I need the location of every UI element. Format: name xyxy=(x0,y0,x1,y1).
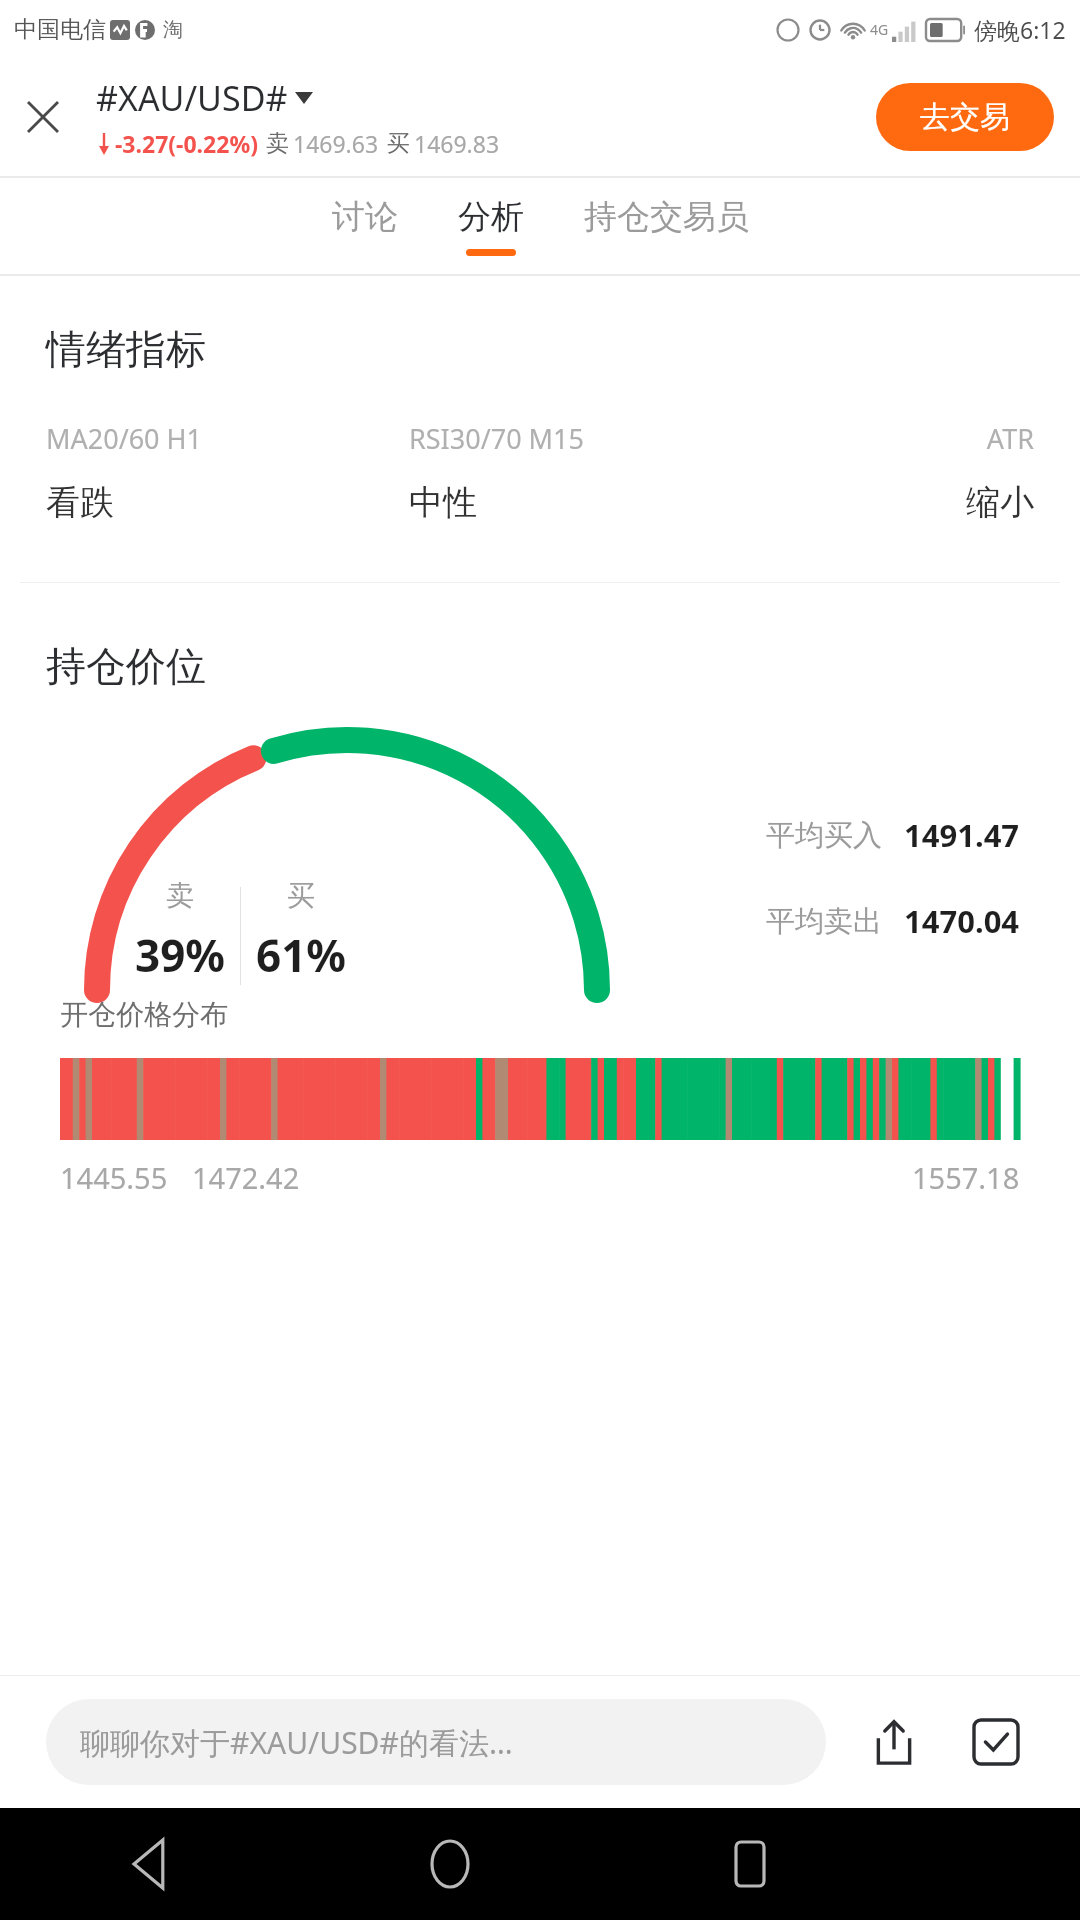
button[interactable]: 持仓交易员 xyxy=(572,190,761,262)
staticText: -3.27(-0.22%) xyxy=(115,128,258,159)
staticText: 1469.83 xyxy=(414,128,500,159)
staticText: 情绪指标 xyxy=(46,324,206,374)
staticText: 看跌 xyxy=(46,481,409,524)
staticText: 中国电信 xyxy=(14,15,106,44)
button[interactable]: Back xyxy=(0,1808,300,1920)
staticText: 傍晚6:12 xyxy=(974,14,1066,45)
button[interactable]: 分析 xyxy=(446,190,536,262)
staticText: #XAU/USD# xyxy=(96,75,288,121)
button[interactable]: Select xyxy=(958,1704,1034,1780)
button[interactable]: #XAU/USD# xyxy=(96,75,313,121)
staticText: 1472.42 xyxy=(192,1158,300,1197)
staticText: 买 xyxy=(287,878,315,913)
staticText: ATR xyxy=(772,420,1034,457)
staticText: 中性 xyxy=(409,481,772,524)
staticText: 去交易 xyxy=(920,98,1010,136)
staticText: RSI30/70 M15 xyxy=(409,420,772,457)
button[interactable]: 聊聊你对于#XAU/USD#的看法… xyxy=(46,1699,826,1785)
staticText: 39% xyxy=(135,925,226,985)
staticText: 1470.04 xyxy=(904,900,1020,942)
staticText: 卖 xyxy=(166,878,194,913)
staticText: 平均买入 xyxy=(766,817,882,854)
staticText: 讨论 xyxy=(332,196,398,238)
staticText: 平均卖出 xyxy=(766,903,882,940)
staticText: 持仓价位 xyxy=(46,641,206,691)
staticText: 淘 xyxy=(163,17,183,42)
button[interactable]: Recents xyxy=(600,1808,900,1920)
staticText: 持仓交易员 xyxy=(584,196,749,238)
staticText: 买 xyxy=(387,129,410,158)
button[interactable]: Close xyxy=(0,74,86,160)
staticText: 开仓价格分布 xyxy=(60,997,228,1032)
button[interactable]: Share xyxy=(856,1704,932,1780)
staticText: 1469.63 xyxy=(293,128,379,159)
staticText: 1491.47 xyxy=(904,814,1020,856)
staticText: 分析 xyxy=(458,196,524,238)
staticText: 1557.18 xyxy=(912,1158,1020,1197)
staticText: 缩小 xyxy=(772,481,1034,524)
staticText: 4G xyxy=(870,20,889,39)
staticText: 聊聊你对于#XAU/USD#的看法… xyxy=(80,1722,513,1763)
staticText: MA20/60 H1 xyxy=(46,420,409,457)
button[interactable]: Home xyxy=(300,1808,600,1920)
staticText: 卖 xyxy=(266,129,289,158)
staticText: 61% xyxy=(256,925,347,985)
button[interactable]: 讨论 xyxy=(320,190,410,262)
button[interactable]: 去交易 xyxy=(876,83,1054,151)
staticText: 1445.55 xyxy=(60,1158,168,1197)
